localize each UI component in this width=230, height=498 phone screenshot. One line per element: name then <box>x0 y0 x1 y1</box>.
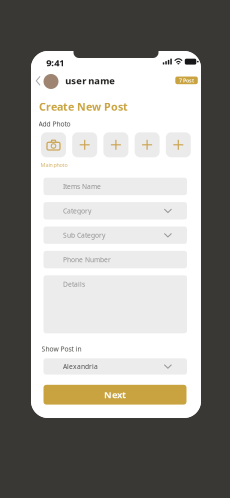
staticText: Category <box>63 206 91 215</box>
staticText: Main photo <box>40 161 67 169</box>
button[interactable]: 7 Post <box>175 76 198 84</box>
staticText: Phone Number <box>63 255 111 264</box>
staticText: Sub Category <box>63 231 105 240</box>
button[interactable]: Add photo <box>103 132 128 157</box>
staticText: Next <box>104 388 126 401</box>
button[interactable]: Category <box>43 202 187 219</box>
staticText: 9:41 <box>46 56 64 69</box>
staticText: Details <box>63 280 85 289</box>
button[interactable]: Details <box>43 275 187 333</box>
button[interactable]: Alexandria <box>43 358 187 375</box>
staticText: Show Post in <box>41 344 81 353</box>
staticText: Items Name <box>63 182 101 191</box>
staticText: 7 Post <box>179 77 194 84</box>
button[interactable]: Add photo <box>135 132 160 157</box>
button[interactable]: Next <box>43 385 186 405</box>
button[interactable]: Phone Number <box>43 251 187 268</box>
staticText: Alexandria <box>63 362 98 371</box>
button[interactable]: Back <box>36 76 40 85</box>
button[interactable]: Add photo <box>166 132 191 157</box>
staticText: Create New Post <box>39 99 128 114</box>
staticText: Add Photo <box>38 119 70 128</box>
staticText: user name <box>65 74 115 87</box>
button[interactable]: Sub Category <box>43 226 187 244</box>
button[interactable]: Main photo <box>41 132 66 157</box>
button[interactable]: Add photo <box>72 132 97 157</box>
button[interactable]: Items Name <box>43 178 187 195</box>
